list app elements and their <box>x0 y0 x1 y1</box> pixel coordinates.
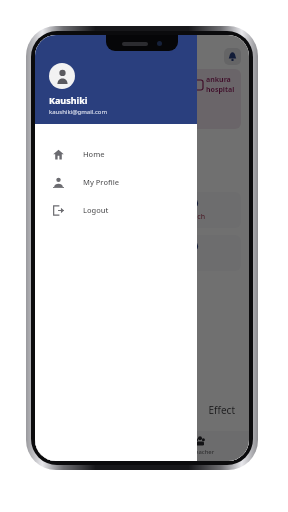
staticText: Speech <box>181 212 206 222</box>
staticText: To Teacher <box>184 448 215 456</box>
button[interactable]: My Profile <box>35 168 197 196</box>
button[interactable]: Open menu <box>43 49 59 65</box>
staticText: kaushiki@gmail.com <box>49 108 108 116</box>
button[interactable]: Hearing <box>43 192 138 228</box>
staticText: Assessment Points <box>35 158 249 178</box>
button[interactable]: ankura <box>43 69 241 129</box>
button[interactable]: To Teacher <box>180 434 219 458</box>
staticText: Home <box>83 149 105 159</box>
button[interactable]: In <box>145 235 241 271</box>
staticText: ankura <box>206 75 231 85</box>
staticText: Effect <box>35 403 235 417</box>
button[interactable]: Notifications <box>224 48 241 65</box>
staticText: Logout <box>83 205 109 215</box>
button[interactable]: Speech <box>145 192 241 228</box>
button[interactable]: Home <box>35 140 197 168</box>
staticText: 10/20 <box>35 138 249 156</box>
staticText: Hearing <box>77 212 104 222</box>
staticText: Kaushiki <box>49 94 88 106</box>
staticText: hospital <box>206 85 235 95</box>
staticText: My Profile <box>83 177 119 187</box>
button[interactable]: Logout <box>35 196 197 224</box>
